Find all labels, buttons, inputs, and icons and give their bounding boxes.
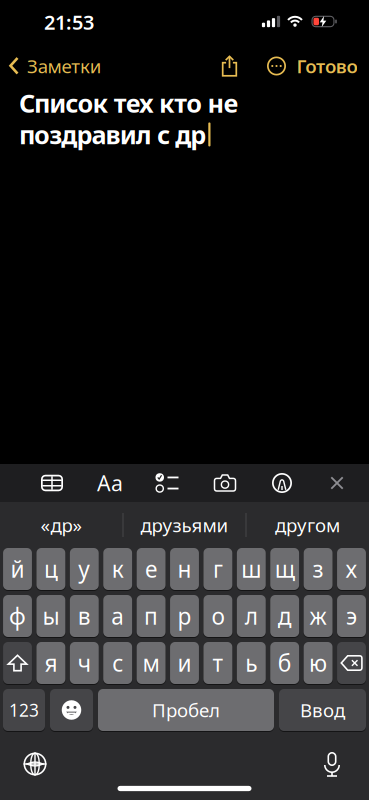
- staticText: ы: [42, 601, 59, 631]
- staticText: т: [212, 648, 223, 678]
- button[interactable]: Готово: [296, 54, 357, 78]
- button[interactable]: у: [70, 548, 99, 590]
- staticText: л: [245, 601, 258, 631]
- button[interactable]: Checklist: [147, 464, 187, 502]
- button[interactable]: ц: [36, 548, 65, 590]
- button[interactable]: Camera: [205, 464, 245, 502]
- staticText: з: [313, 554, 324, 584]
- button[interactable]: ч: [70, 642, 99, 684]
- button[interactable]: Format: [90, 464, 130, 502]
- button[interactable]: н: [170, 548, 199, 590]
- staticText: ю: [309, 648, 327, 678]
- staticText: х: [345, 554, 357, 584]
- button[interactable]: к: [103, 548, 132, 590]
- staticText: г: [213, 554, 223, 584]
- button[interactable]: Заметки: [0, 54, 102, 78]
- button[interactable]: Emoji: [50, 689, 93, 731]
- button[interactable]: л: [237, 595, 266, 637]
- staticText: ш: [241, 554, 261, 584]
- button[interactable]: т: [203, 642, 232, 684]
- staticText: д: [278, 601, 292, 631]
- button[interactable]: щ: [270, 548, 299, 590]
- staticText: й: [10, 554, 24, 584]
- button[interactable]: «др»: [0, 502, 123, 548]
- staticText: и: [177, 648, 191, 678]
- staticText: ь: [245, 648, 257, 678]
- button[interactable]: ю: [304, 642, 332, 684]
- button[interactable]: More: [259, 49, 293, 83]
- staticText: п: [144, 601, 158, 631]
- staticText: э: [346, 601, 357, 631]
- button[interactable]: другом: [246, 502, 369, 548]
- button[interactable]: з: [304, 548, 332, 590]
- staticText: ж: [310, 601, 327, 631]
- staticText: Список тех кто не: [19, 86, 239, 120]
- staticText: 21:53: [44, 9, 94, 35]
- button[interactable]: г: [203, 548, 232, 590]
- button[interactable]: Delete: [337, 642, 366, 684]
- staticText: б: [278, 648, 292, 678]
- button[interactable]: р: [170, 595, 199, 637]
- staticText: Ввод: [300, 698, 345, 722]
- button[interactable]: я: [36, 642, 65, 684]
- button[interactable]: Next keyboard: [13, 742, 57, 786]
- button[interactable]: й: [3, 548, 32, 590]
- staticText: я: [44, 648, 57, 678]
- staticText: е: [145, 554, 157, 584]
- staticText: 123: [9, 698, 39, 721]
- staticText: поздравил с др: [19, 118, 206, 151]
- staticText: щ: [275, 554, 295, 584]
- staticText: ц: [44, 554, 58, 584]
- button[interactable]: ш: [237, 548, 266, 590]
- button[interactable]: е: [137, 548, 166, 590]
- staticText: м: [143, 648, 160, 678]
- button[interactable]: б: [270, 642, 299, 684]
- button[interactable]: ы: [36, 595, 65, 637]
- staticText: Готово: [296, 54, 357, 78]
- button[interactable]: Shift: [3, 642, 32, 684]
- staticText: н: [177, 554, 191, 584]
- button[interactable]: Close: [317, 464, 357, 502]
- button[interactable]: д: [270, 595, 299, 637]
- staticText: Aa: [97, 469, 123, 497]
- staticText: Пробел: [152, 698, 220, 722]
- button[interactable]: друзьями: [123, 502, 246, 548]
- button[interactable]: в: [70, 595, 99, 637]
- button[interactable]: 123: [3, 689, 45, 731]
- staticText: а: [111, 601, 124, 631]
- staticText: ф: [9, 601, 26, 631]
- button[interactable]: Table: [32, 464, 72, 502]
- button[interactable]: и: [170, 642, 199, 684]
- button[interactable]: Пробел: [98, 689, 274, 731]
- staticText: в: [78, 601, 91, 631]
- button[interactable]: м: [137, 642, 166, 684]
- staticText: другом: [275, 513, 340, 537]
- staticText: р: [177, 601, 191, 631]
- staticText: ч: [78, 648, 91, 678]
- staticText: с: [112, 648, 123, 678]
- button[interactable]: п: [137, 595, 166, 637]
- button[interactable]: Markup: [262, 464, 302, 502]
- staticText: «др»: [40, 513, 82, 537]
- button[interactable]: Ввод: [279, 689, 366, 731]
- staticText: о: [211, 601, 224, 631]
- button[interactable]: х: [337, 548, 366, 590]
- button[interactable]: о: [203, 595, 232, 637]
- button[interactable]: с: [103, 642, 132, 684]
- staticText: у: [78, 554, 90, 584]
- button[interactable]: Share: [212, 49, 246, 83]
- button[interactable]: Dictate: [310, 742, 354, 786]
- button[interactable]: а: [103, 595, 132, 637]
- button[interactable]: э: [337, 595, 366, 637]
- button[interactable]: ь: [237, 642, 266, 684]
- staticText: к: [112, 554, 124, 584]
- button[interactable]: ж: [304, 595, 332, 637]
- staticText: друзьями: [140, 513, 228, 537]
- staticText: Заметки: [27, 54, 102, 78]
- button[interactable]: ф: [3, 595, 32, 637]
